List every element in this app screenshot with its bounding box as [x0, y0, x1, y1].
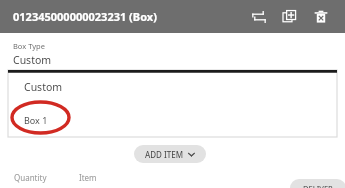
button[interactable]: Custom — [0, 53, 60, 67]
staticText: DELIVER — [303, 183, 333, 188]
button[interactable]: Delete — [307, 3, 335, 31]
staticText: Item — [79, 172, 97, 183]
staticText: Custom — [24, 80, 63, 94]
button[interactable]: Add copy — [276, 3, 304, 31]
button[interactable]: Box 1 — [8, 103, 337, 137]
staticText: Box 1 — [24, 114, 48, 126]
button[interactable]: Transfer — [245, 3, 273, 31]
staticText: Quantity — [14, 172, 47, 183]
staticText: 012345000000023231 (Box) — [13, 9, 157, 24]
staticText: Box Type — [13, 41, 45, 51]
staticText: ADD ITEM — [145, 149, 184, 160]
button[interactable]: ADD ITEM — [134, 145, 206, 163]
staticText: Custom — [13, 53, 52, 67]
button[interactable]: DELIVER — [290, 179, 345, 188]
button[interactable]: Custom — [8, 70, 337, 103]
